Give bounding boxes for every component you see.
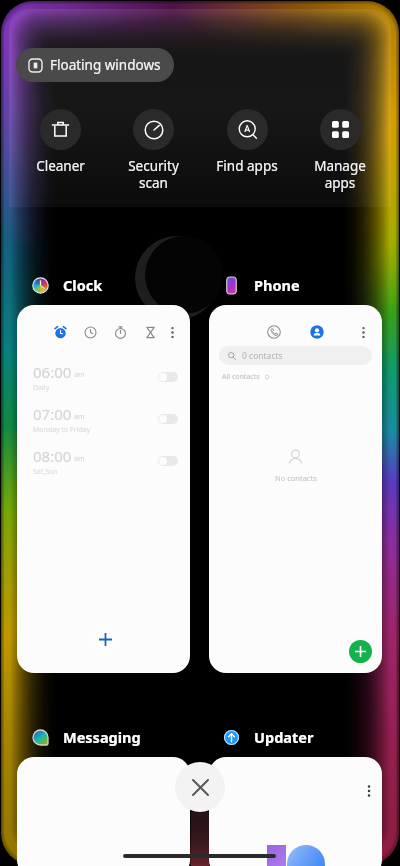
staticText: am [74, 454, 85, 464]
button[interactable] [84, 326, 97, 339]
button[interactable]: 07:00 [17, 404, 190, 434]
button[interactable]: Floating windows [16, 48, 174, 82]
staticText: Cleaner [36, 157, 85, 175]
button[interactable]: 0 contacts [219, 346, 372, 365]
button[interactable]: Add alarm [92, 626, 118, 652]
other: Manage apps [332, 121, 349, 138]
staticText: Monday to Friday [33, 425, 91, 434]
staticText: Manage apps [314, 157, 366, 192]
button[interactable] [310, 325, 324, 339]
button[interactable]: 08:00 [17, 446, 190, 476]
button[interactable] [209, 757, 382, 866]
button[interactable]: 06:00 [17, 362, 190, 392]
staticText: Floating windows [50, 56, 161, 74]
staticText: Find apps [216, 157, 278, 175]
staticText: Clock [63, 275, 103, 295]
staticText: All contacts [222, 372, 260, 382]
button[interactable]: Messaging [32, 727, 141, 747]
button[interactable]: More options [17, 305, 190, 673]
other: Dialer [267, 325, 281, 339]
button[interactable]: Phone [223, 275, 300, 295]
button[interactable]: Dialer [267, 325, 281, 339]
staticText: am [74, 412, 85, 422]
staticText: Messaging [63, 727, 141, 747]
button[interactable] [17, 757, 190, 866]
staticText: No contacts [275, 473, 317, 483]
button[interactable]: Updater [223, 727, 314, 747]
button[interactable] [114, 326, 127, 339]
button[interactable] [158, 414, 178, 424]
staticText: Daily [33, 383, 50, 392]
staticText: Phone [254, 275, 300, 295]
button[interactable]: More options [357, 326, 370, 339]
button[interactable] [158, 372, 178, 382]
other: Cleaner [51, 120, 70, 139]
button[interactable]: Cleaner [18, 109, 102, 175]
button[interactable]: All contacts [222, 372, 270, 382]
staticText: Security scan [128, 157, 179, 192]
staticText: Sat,Sun [33, 467, 58, 476]
button[interactable] [144, 326, 157, 339]
button[interactable]: Dialer [209, 305, 382, 673]
button[interactable]: Find apps [205, 109, 289, 175]
button[interactable] [54, 326, 67, 339]
staticText: Updater [254, 727, 314, 747]
button[interactable]: Add contact [349, 640, 372, 663]
staticText: 0 contacts [242, 350, 283, 362]
staticText: am [74, 370, 85, 380]
staticText: 06:00 [33, 362, 72, 382]
button[interactable]: Clock [32, 275, 103, 295]
button[interactable]: Security scan [111, 109, 195, 192]
staticText: 07:00 [33, 404, 72, 424]
staticText: 08:00 [33, 446, 72, 466]
other: Security scan [144, 120, 164, 140]
button[interactable] [158, 456, 178, 466]
button[interactable]: Close [175, 762, 225, 812]
button[interactable]: More options [166, 326, 179, 339]
button[interactable]: Manage apps [298, 109, 382, 192]
other: Find apps [238, 120, 258, 140]
